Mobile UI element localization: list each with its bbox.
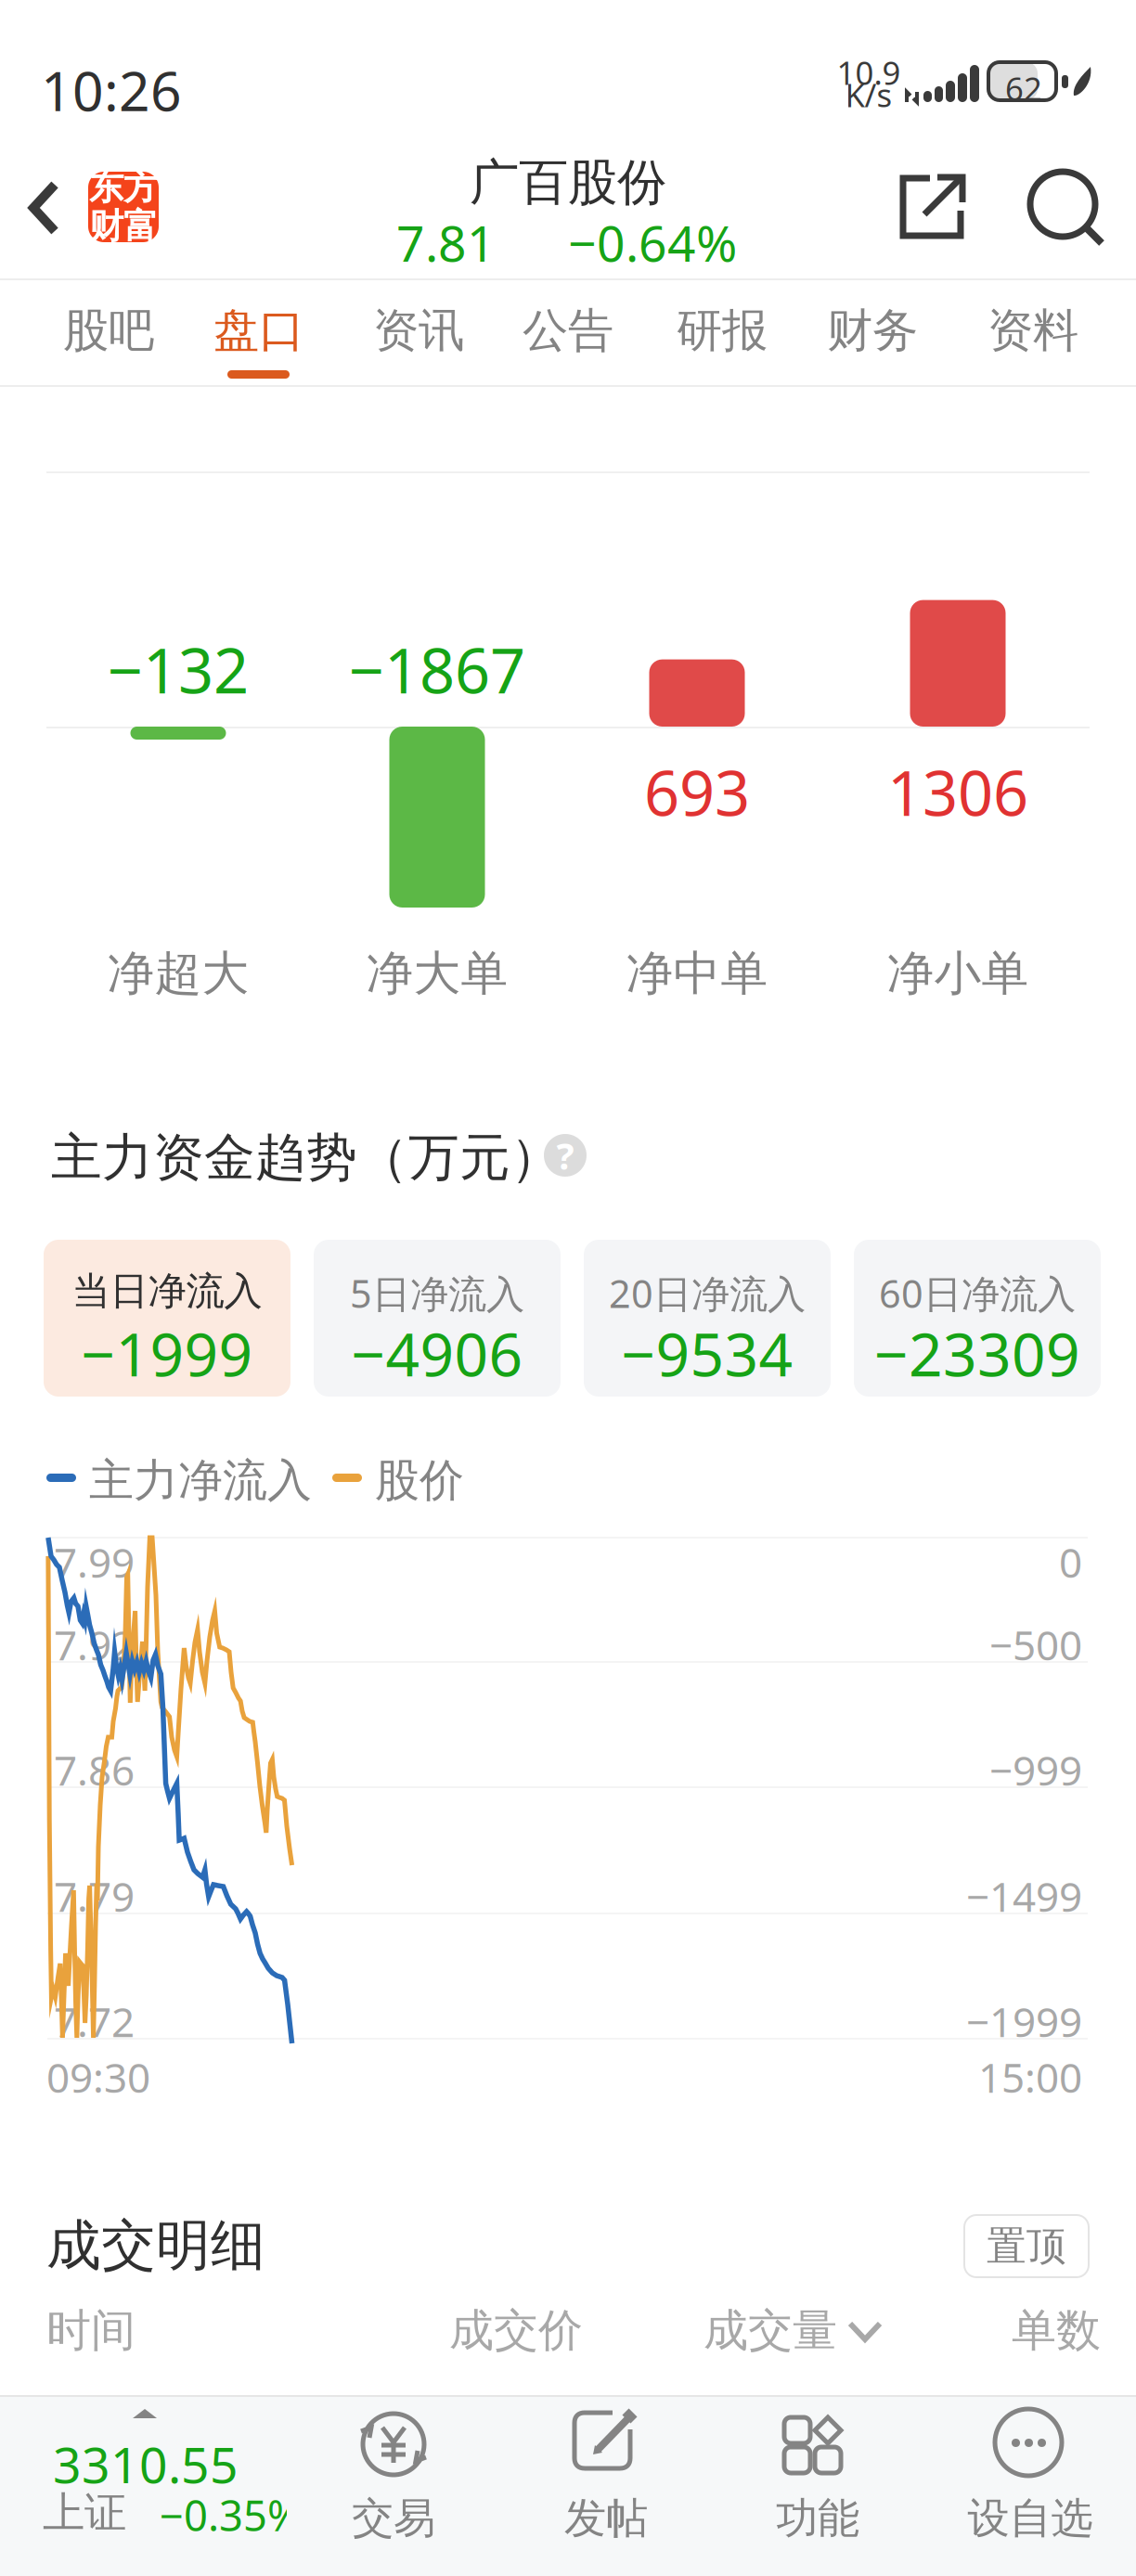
button[interactable]: 上证指数 <box>0 2405 306 2576</box>
staticText: −1867 <box>349 628 525 710</box>
staticText: 09:30 <box>46 2050 150 2104</box>
staticText: 7.86 <box>54 1743 135 1797</box>
staticText: 7.79 <box>54 1869 135 1923</box>
button[interactable]: Back <box>0 156 89 260</box>
staticText: 净中单 <box>626 945 768 1002</box>
button[interactable]: 盘口 <box>189 280 329 385</box>
staticText: −4906 <box>351 1314 523 1393</box>
staticText: 0 <box>1059 1535 1082 1589</box>
button[interactable]: 当日净流入 <box>44 1240 290 1397</box>
staticText: −23309 <box>874 1314 1080 1393</box>
button[interactable]: 5日净流入 <box>314 1240 561 1397</box>
button[interactable]: Share <box>898 173 969 243</box>
staticText: 单数 <box>1012 2303 1101 2358</box>
staticText: 净超大 <box>107 945 249 1002</box>
staticText: 主力资金趋势（万元） <box>51 1127 562 1189</box>
staticText: 7.92 <box>54 1617 135 1672</box>
staticText: 上证 <box>43 2487 126 2539</box>
staticText: 股价 <box>375 1453 464 1508</box>
button[interactable]: 财务 <box>803 280 942 385</box>
staticText: −999 <box>989 1743 1082 1797</box>
button[interactable]: 资料 <box>963 280 1103 385</box>
staticText: 发帖 <box>564 2492 648 2544</box>
staticText: 财富 <box>89 205 158 248</box>
staticText: 成交量 <box>704 2303 837 2358</box>
staticText: 置顶 <box>987 2222 1066 2270</box>
staticText: 资讯 <box>373 303 464 359</box>
staticText: 净大单 <box>366 945 508 1002</box>
button[interactable]: 交易 <box>287 2405 500 2576</box>
staticText: −1499 <box>966 1869 1082 1923</box>
staticText: 成交价 <box>449 2303 583 2358</box>
button[interactable]: 公告 <box>498 280 638 385</box>
staticText: 研报 <box>677 303 768 359</box>
staticText: 62 <box>1005 67 1042 109</box>
staticText: −0.35% <box>160 2487 303 2543</box>
staticText: 成交明细 <box>46 2212 265 2279</box>
staticText: 7.81 <box>396 210 496 275</box>
staticText: 功能 <box>776 2492 859 2544</box>
staticText: 公告 <box>523 303 613 359</box>
button[interactable]: 设自选 <box>923 2405 1136 2576</box>
staticText: 东方 <box>89 166 158 209</box>
staticText: −132 <box>108 628 249 710</box>
staticText: 7.72 <box>54 1994 135 2048</box>
staticText: 资料 <box>988 303 1078 359</box>
staticText: 设自选 <box>968 2492 1093 2544</box>
button[interactable]: 研报 <box>652 280 792 385</box>
staticText: 净小单 <box>887 945 1029 1002</box>
button[interactable]: 置顶 <box>964 2215 1089 2277</box>
staticText: 15:00 <box>978 2050 1082 2104</box>
button[interactable]: 20日净流入 <box>584 1240 831 1397</box>
staticText: 3310.55 <box>53 2431 239 2497</box>
staticText: −1999 <box>81 1314 253 1393</box>
staticText: 主力净流入 <box>89 1453 312 1508</box>
staticText: 股吧 <box>63 303 154 359</box>
button[interactable]: 资讯 <box>349 280 488 385</box>
staticText: K/s <box>845 73 892 116</box>
staticText: 当日净流入 <box>72 1268 262 1315</box>
staticText: 广百股份 <box>470 152 666 213</box>
button[interactable]: 功能 <box>711 2405 924 2576</box>
button[interactable]: Search <box>1029 169 1107 247</box>
staticText: 时间 <box>46 2303 136 2358</box>
staticText: 60日净流入 <box>879 1268 1076 1319</box>
staticText: 10.9 <box>837 51 901 94</box>
staticText: 1306 <box>887 751 1028 833</box>
staticText: 交易 <box>352 2492 435 2544</box>
staticText: −9534 <box>621 1314 793 1393</box>
staticText: −0.64% <box>568 210 737 275</box>
button[interactable]: East Money <box>88 172 159 242</box>
staticText: 盘口 <box>213 303 304 359</box>
button[interactable]: 发帖 <box>499 2405 713 2576</box>
staticText: −1999 <box>966 1994 1082 2048</box>
staticText: 693 <box>644 751 750 833</box>
staticText: 7.99 <box>54 1535 135 1589</box>
staticText: −500 <box>989 1617 1082 1672</box>
button[interactable]: 60日净流入 <box>854 1240 1101 1397</box>
staticText: ? <box>556 1131 574 1180</box>
staticText: 10:26 <box>41 54 182 126</box>
staticText: 财务 <box>827 303 918 359</box>
staticText: 20日净流入 <box>609 1268 806 1319</box>
button[interactable]: 股吧 <box>39 280 178 385</box>
staticText: 5日净流入 <box>350 1268 524 1319</box>
